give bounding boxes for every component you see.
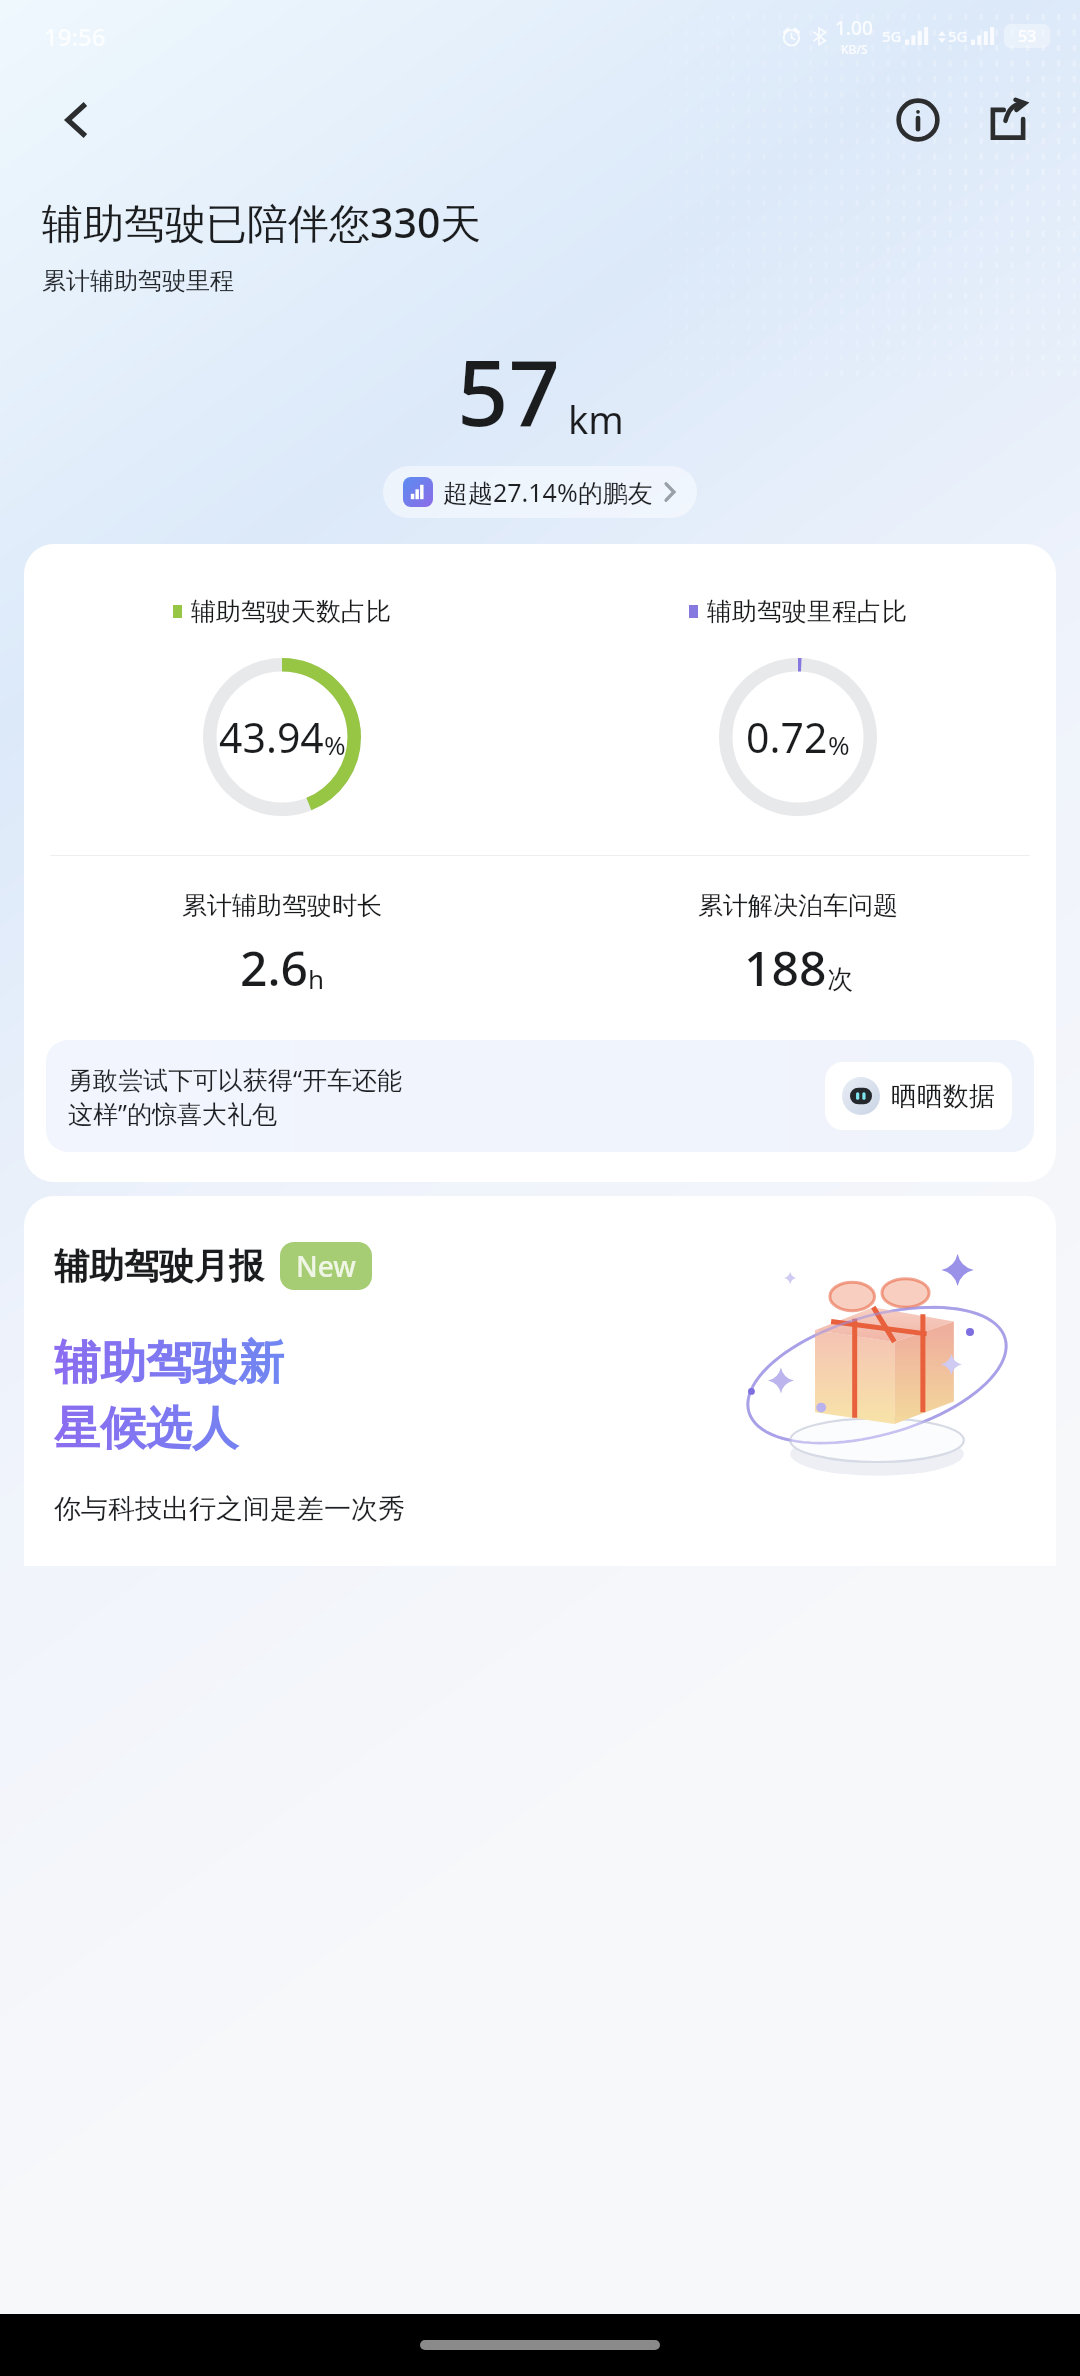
staticText: 超越27.14%的鹏友 (443, 475, 653, 509)
button[interactable]: 晒晒数据 (825, 1062, 1012, 1130)
staticText: 累计解决泊车问题 (698, 890, 898, 921)
staticText: 次 (827, 963, 853, 996)
staticText: 这样”的惊喜大礼包 (68, 1096, 277, 1130)
staticText: 0.72 (746, 709, 828, 765)
staticText: 53 (1018, 25, 1037, 47)
staticText: 晒晒数据 (891, 1080, 995, 1113)
staticText: 57 (457, 330, 560, 453)
staticText: 辅助驾驶新 (54, 1334, 284, 1392)
staticText: 辅助驾驶里程占比 (707, 596, 907, 627)
button[interactable]: 勇敢尝试下可以获得“开车还能 (46, 1040, 1034, 1152)
staticText: 累计辅助驾驶里程 (42, 266, 234, 296)
staticText: 2.6 (240, 935, 308, 1000)
staticText: h (308, 961, 325, 996)
staticText: 5G (882, 26, 902, 46)
button[interactable]: 辅助驾驶月报 (24, 1196, 1056, 1566)
staticText: 5G (948, 26, 968, 46)
staticText: KB/S (841, 41, 868, 57)
staticText: 星候选人 (54, 1400, 238, 1458)
staticText: 1.00 (835, 15, 873, 41)
staticText: 累计辅助驾驶时长 (182, 890, 382, 921)
staticText: New (296, 1247, 356, 1285)
staticText: % (828, 727, 850, 762)
staticText: km (568, 393, 624, 445)
button[interactable]: Share (972, 84, 1044, 156)
staticText: 43.94 (219, 709, 324, 765)
staticText: 辅助驾驶天数占比 (191, 596, 391, 627)
staticText: 188 (744, 935, 827, 1000)
staticText: 辅助驾驶已陪伴您330天 (42, 194, 482, 250)
button[interactable]: Info (882, 84, 954, 156)
staticText: 19:56 (44, 20, 106, 53)
staticText: % (324, 727, 346, 762)
button[interactable]: 超越27.14%的鹏友 (383, 466, 697, 518)
button[interactable]: Back (40, 84, 112, 156)
staticText: 你与科技出行之间是差一次秀 (54, 1492, 405, 1526)
staticText: 辅助驾驶月报 (54, 1244, 264, 1288)
staticText: 勇敢尝试下可以获得“开车还能 (68, 1062, 402, 1096)
